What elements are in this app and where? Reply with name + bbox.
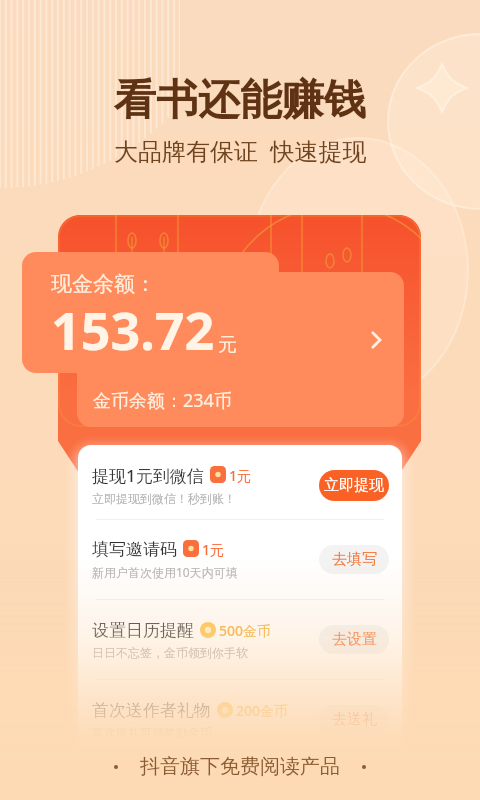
staticText: 1元: [202, 540, 225, 559]
button[interactable]: 提现1元到微信: [78, 445, 402, 519]
button[interactable]: [58, 215, 421, 473]
staticText: 立即提现: [324, 476, 384, 495]
button[interactable]: 设置日历提醒: [78, 600, 402, 679]
staticText: 去送礼: [332, 710, 377, 729]
staticText: 153.72: [51, 294, 215, 365]
button[interactable]: 去送礼: [319, 705, 389, 734]
staticText: 看书还能赚钱: [114, 74, 366, 127]
staticText: 去设置: [332, 630, 377, 649]
staticText: 填写邀请码: [92, 539, 177, 560]
staticText: 200金币: [236, 701, 289, 720]
button[interactable]: 填写邀请码: [78, 520, 402, 599]
staticText: 提现1元到微信: [92, 464, 204, 487]
staticText: 立即提现到微信！秒到账！: [92, 491, 236, 506]
staticText: 设置日历提醒: [92, 620, 194, 641]
staticText: 金币余额：234币: [93, 388, 232, 413]
staticText: 元: [218, 333, 237, 357]
staticText: 新用户首次使用10天内可填: [92, 564, 238, 580]
staticText: 日日不忘签，金币领到你手软: [92, 645, 248, 660]
staticText: 大品牌有保证 快速提现: [114, 134, 367, 167]
staticText: 1元: [229, 466, 252, 485]
button[interactable]: 去设置: [319, 625, 389, 654]
staticText: 抖音旗下免费阅读产品: [140, 754, 340, 779]
staticText: 去填写: [332, 550, 377, 569]
button[interactable]: 首次送作者礼物: [78, 680, 402, 759]
staticText: 现金余额：: [51, 271, 156, 297]
button[interactable]: 去填写: [319, 545, 389, 574]
button[interactable]: 立即提现: [319, 470, 389, 501]
button[interactable]: 现金余额：: [22, 252, 279, 373]
button[interactable]: 查看更多: [358, 322, 394, 358]
staticText: 500金币: [219, 621, 272, 640]
staticText: 首次送作者礼物: [92, 700, 211, 721]
